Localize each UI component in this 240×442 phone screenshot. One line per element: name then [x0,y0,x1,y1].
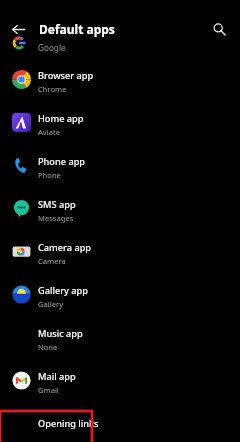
staticText: Messages [38,213,74,223]
button[interactable]: Camera app [0,230,240,273]
button[interactable]: Mail app [0,359,240,402]
staticText: Opening links [38,417,99,430]
staticText: Google [38,42,66,53]
button[interactable]: Google [0,44,240,58]
staticText: Gmail [38,385,59,395]
staticText: Default apps [39,21,115,37]
button[interactable]: Browser app [0,58,240,101]
staticText: Gallery [38,299,63,309]
button[interactable]: Back [6,17,30,41]
button[interactable]: Music app [0,316,240,359]
staticText: Camera [38,256,66,266]
button[interactable]: Phone app [0,144,240,187]
staticText: SMS app [38,198,76,211]
staticText: Gallery app [38,284,88,297]
staticText: Browser app [38,69,94,82]
staticText: Home app [38,112,84,125]
staticText: Camera app [38,241,92,254]
staticText: Phone app [38,155,86,168]
button[interactable]: Gallery app [0,273,240,316]
staticText: Aviate [38,127,60,137]
button[interactable]: SMS app [0,187,240,230]
staticText: Chrome [38,84,67,94]
staticText: None [38,342,58,352]
staticText: Phone [38,170,61,180]
staticText: Music app [38,327,83,340]
button[interactable]: Opening links [0,402,240,442]
button[interactable]: Home app [0,101,240,144]
staticText: Mail app [38,370,76,383]
button[interactable]: Search [207,17,231,41]
